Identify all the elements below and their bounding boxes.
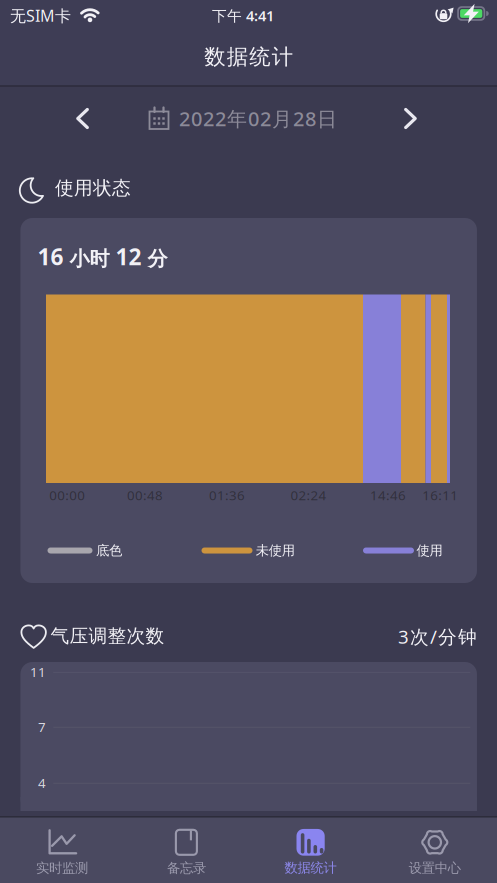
button[interactable]: 选择日期: [148, 96, 393, 141]
staticText: 使用状态: [55, 176, 131, 199]
staticText: 2022年02月28日: [179, 105, 337, 132]
staticText: 11: [30, 663, 46, 681]
staticText: 数据统计: [204, 44, 293, 70]
button[interactable]: 后一天: [388, 96, 433, 141]
staticText: 00:00: [49, 486, 85, 504]
staticText: 下午 4:41: [212, 6, 274, 25]
staticText: 4: [38, 774, 46, 792]
staticText: 无SIM卡: [10, 5, 71, 26]
staticText: 气压调整次数: [50, 624, 164, 647]
staticText: 设置中心: [409, 860, 461, 876]
staticText: 16 小时 12 分: [37, 241, 167, 271]
staticText: 使用: [416, 542, 442, 559]
button[interactable]: 备忘录: [124, 820, 248, 883]
staticText: 备忘录: [167, 860, 206, 876]
staticText: 7: [38, 718, 46, 736]
button[interactable]: 设置中心: [373, 820, 497, 883]
staticText: 14:46: [370, 486, 406, 504]
staticText: 数据统计: [285, 860, 337, 876]
staticText: 01:36: [209, 486, 245, 504]
button[interactable]: 数据统计: [249, 820, 373, 883]
staticText: 实时监测: [36, 860, 88, 876]
staticText: 未使用: [256, 542, 295, 559]
button[interactable]: 实时监测: [0, 820, 124, 883]
button[interactable]: 前一天: [60, 96, 105, 141]
staticText: 00:48: [127, 486, 163, 504]
staticText: 16:11: [422, 486, 458, 504]
staticText: 02:24: [290, 486, 326, 504]
staticText: 3次/分钟: [398, 624, 477, 649]
staticText: 底色: [96, 542, 122, 559]
